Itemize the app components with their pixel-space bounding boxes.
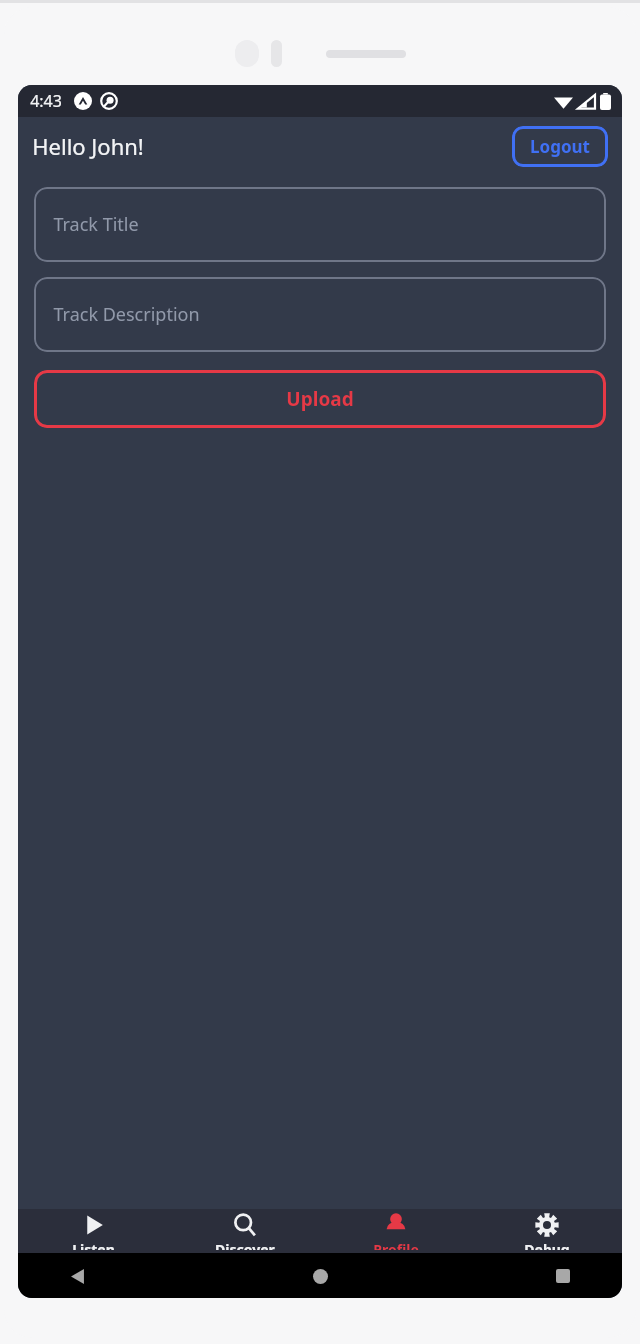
button[interactable]: Track Title: [34, 187, 606, 262]
other: Listen: [81, 1212, 107, 1238]
staticText: 4:43: [30, 90, 62, 112]
button[interactable]: Recents: [546, 1259, 580, 1293]
other: Discover: [232, 1212, 258, 1238]
staticText: Hello John!: [32, 131, 144, 161]
staticText: Discover: [215, 1240, 275, 1250]
button[interactable]: Profile: [320, 1209, 471, 1253]
staticText: Upload: [286, 386, 354, 412]
button[interactable]: Discover: [169, 1209, 320, 1253]
staticText: Logout: [530, 135, 590, 158]
staticText: Track Description: [53, 302, 200, 327]
other: Debug: [534, 1212, 560, 1238]
staticText: Debug: [524, 1240, 570, 1250]
button[interactable]: Home: [303, 1259, 337, 1293]
staticText: Profile: [373, 1240, 419, 1250]
button[interactable]: Back: [60, 1259, 94, 1293]
button[interactable]: Listen: [18, 1209, 169, 1253]
staticText: Listen: [72, 1240, 115, 1250]
button[interactable]: Upload: [34, 370, 606, 428]
button[interactable]: Track Description: [34, 277, 606, 352]
button[interactable]: Debug: [471, 1209, 622, 1253]
staticText: Track Title: [53, 212, 139, 237]
button[interactable]: Logout: [512, 126, 608, 167]
other: Profile: [383, 1212, 409, 1238]
